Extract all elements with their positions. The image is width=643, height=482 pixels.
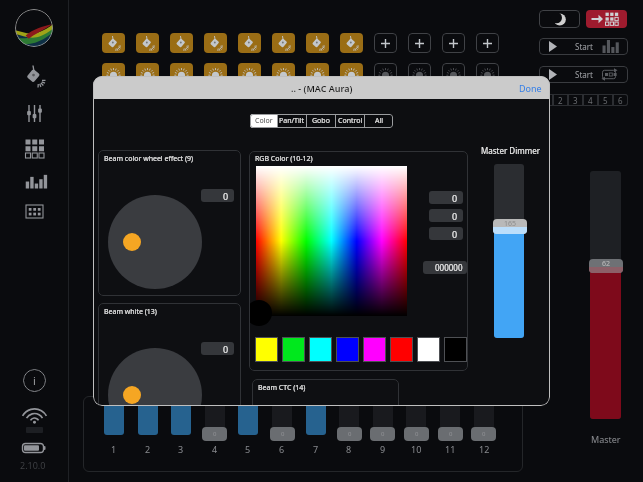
button[interactable]: Add fixture bbox=[408, 33, 431, 53]
button[interactable]: Fixture bbox=[102, 63, 125, 83]
button[interactable]: Fixture bbox=[272, 93, 295, 113]
button[interactable]: Fixture slot bbox=[374, 93, 397, 113]
button[interactable]: Fixture bbox=[238, 93, 261, 113]
button[interactable]: Fixture bbox=[306, 63, 329, 83]
button[interactable]: Fixture slot bbox=[442, 63, 465, 83]
staticText: 2 bbox=[558, 95, 563, 106]
button[interactable]: Color swatch bbox=[255, 337, 278, 362]
button[interactable]: Fader 4 bbox=[205, 380, 225, 428]
button[interactable]: Fixture bbox=[238, 63, 261, 83]
button[interactable]: Start bbox=[539, 38, 628, 55]
button[interactable]: Add fixture bbox=[442, 33, 465, 53]
button[interactable]: Fixture slot bbox=[408, 63, 431, 83]
button[interactable]: Fixture slot bbox=[476, 63, 499, 83]
button[interactable]: Add fixture bbox=[476, 33, 499, 53]
button[interactable]: Blackout bbox=[539, 10, 580, 28]
staticText: 6 bbox=[279, 443, 285, 455]
button[interactable]: Fixture bbox=[340, 93, 363, 113]
button[interactable]: Fixture bbox=[204, 63, 227, 83]
button[interactable]: Fader 7 bbox=[306, 380, 326, 428]
button[interactable]: Fixture bbox=[170, 93, 193, 113]
button[interactable]: All bbox=[365, 114, 393, 128]
button[interactable]: Color bbox=[250, 114, 277, 128]
button[interactable]: Gobo bbox=[307, 114, 335, 128]
button[interactable]: Fixture bbox=[306, 33, 329, 53]
button[interactable]: Fixture bbox=[170, 33, 193, 53]
button[interactable]: 2 bbox=[553, 94, 568, 106]
button[interactable]: Patch bbox=[22, 199, 47, 224]
button[interactable]: Beam white (13) bbox=[98, 303, 241, 406]
button[interactable]: Fixture bbox=[170, 63, 193, 83]
button[interactable]: Pan/Tilt bbox=[278, 114, 306, 128]
button[interactable]: Color swatch bbox=[309, 337, 332, 362]
button[interactable]: Fader 12 bbox=[474, 380, 494, 428]
button[interactable]: Master bbox=[591, 433, 621, 445]
button[interactable]: Fader 1 bbox=[104, 380, 124, 428]
button[interactable]: Color swatch bbox=[390, 337, 413, 362]
button[interactable]: Fixtures bbox=[22, 64, 47, 89]
button[interactable]: Color swatch bbox=[417, 337, 440, 362]
button[interactable]: Faders bbox=[22, 101, 47, 126]
button[interactable]: Fader 3 bbox=[171, 380, 191, 428]
button[interactable]: Fixture bbox=[102, 93, 125, 113]
button[interactable]: Battery bbox=[22, 442, 47, 454]
staticText: All bbox=[375, 116, 384, 126]
button[interactable]: Go to scenes bbox=[586, 10, 627, 28]
button[interactable]: Fader 10 bbox=[406, 380, 426, 428]
staticText: 165 bbox=[504, 219, 517, 229]
button[interactable]: Fixture slot bbox=[374, 63, 397, 83]
button[interactable]: Add fixture bbox=[374, 33, 397, 53]
button[interactable]: 4 bbox=[583, 94, 598, 106]
staticText: 62 bbox=[602, 259, 611, 269]
button[interactable]: Color swatch bbox=[336, 337, 359, 362]
staticText: Gobo bbox=[312, 116, 330, 126]
button[interactable]: Fixture bbox=[238, 33, 261, 53]
button[interactable]: 6 bbox=[613, 94, 628, 106]
button[interactable]: Color swatch bbox=[282, 337, 305, 362]
button[interactable]: 3 bbox=[568, 94, 583, 106]
button[interactable]: Fixture bbox=[340, 63, 363, 83]
button[interactable]: Wifi bbox=[21, 406, 48, 425]
button[interactable]: Fixture bbox=[136, 33, 159, 53]
button[interactable]: Done bbox=[519, 82, 542, 94]
button[interactable]: Fixture bbox=[272, 63, 295, 83]
button[interactable]: Start bbox=[539, 66, 628, 83]
button[interactable]: Fixture bbox=[340, 33, 363, 53]
staticText: 12 bbox=[479, 443, 490, 455]
button[interactable]: 1 bbox=[539, 94, 553, 106]
button[interactable]: Info bbox=[23, 369, 46, 392]
button[interactable]: Fixture bbox=[204, 93, 227, 113]
button[interactable]: Fader 2 bbox=[138, 380, 158, 428]
button[interactable]: Control bbox=[336, 114, 364, 128]
button[interactable]: Fixture slot bbox=[442, 93, 465, 113]
button[interactable]: Color field bbox=[256, 166, 407, 316]
staticText: i bbox=[33, 373, 36, 388]
button[interactable]: Fader 6 bbox=[272, 380, 292, 428]
button[interactable]: Fixture bbox=[136, 93, 159, 113]
button[interactable]: Level 62 bbox=[589, 259, 623, 273]
button[interactable]: Fader 11 bbox=[440, 380, 460, 428]
staticText: Master Dimmer bbox=[481, 145, 541, 156]
button[interactable]: Beam color wheel effect (9) bbox=[98, 150, 241, 296]
button[interactable]: Fixture slot bbox=[408, 93, 431, 113]
staticText: 11 bbox=[445, 443, 456, 455]
button[interactable]: Fixture bbox=[102, 33, 125, 53]
staticText: 000000 bbox=[435, 262, 463, 273]
button[interactable]: App logo bbox=[15, 9, 53, 47]
button[interactable]: Color swatch bbox=[444, 337, 467, 362]
button[interactable]: Fixture slot bbox=[476, 93, 499, 113]
staticText: Start bbox=[575, 69, 593, 80]
button[interactable]: Fixture bbox=[306, 93, 329, 113]
button[interactable]: Fader 8 bbox=[339, 380, 359, 428]
button[interactable]: Fixture bbox=[272, 33, 295, 53]
button[interactable]: Levels bbox=[22, 168, 47, 193]
button[interactable]: Scenes bbox=[22, 135, 47, 160]
button[interactable]: Master dimmer level bbox=[493, 219, 527, 234]
button[interactable]: Fixture bbox=[136, 63, 159, 83]
button[interactable]: Fader 5 bbox=[238, 380, 258, 428]
button[interactable]: Fixture bbox=[204, 33, 227, 53]
button[interactable]: 5 bbox=[598, 94, 613, 106]
button[interactable]: Fader 9 bbox=[373, 380, 393, 428]
staticText: 2.10.0 bbox=[20, 459, 46, 471]
button[interactable]: Color swatch bbox=[363, 337, 386, 362]
